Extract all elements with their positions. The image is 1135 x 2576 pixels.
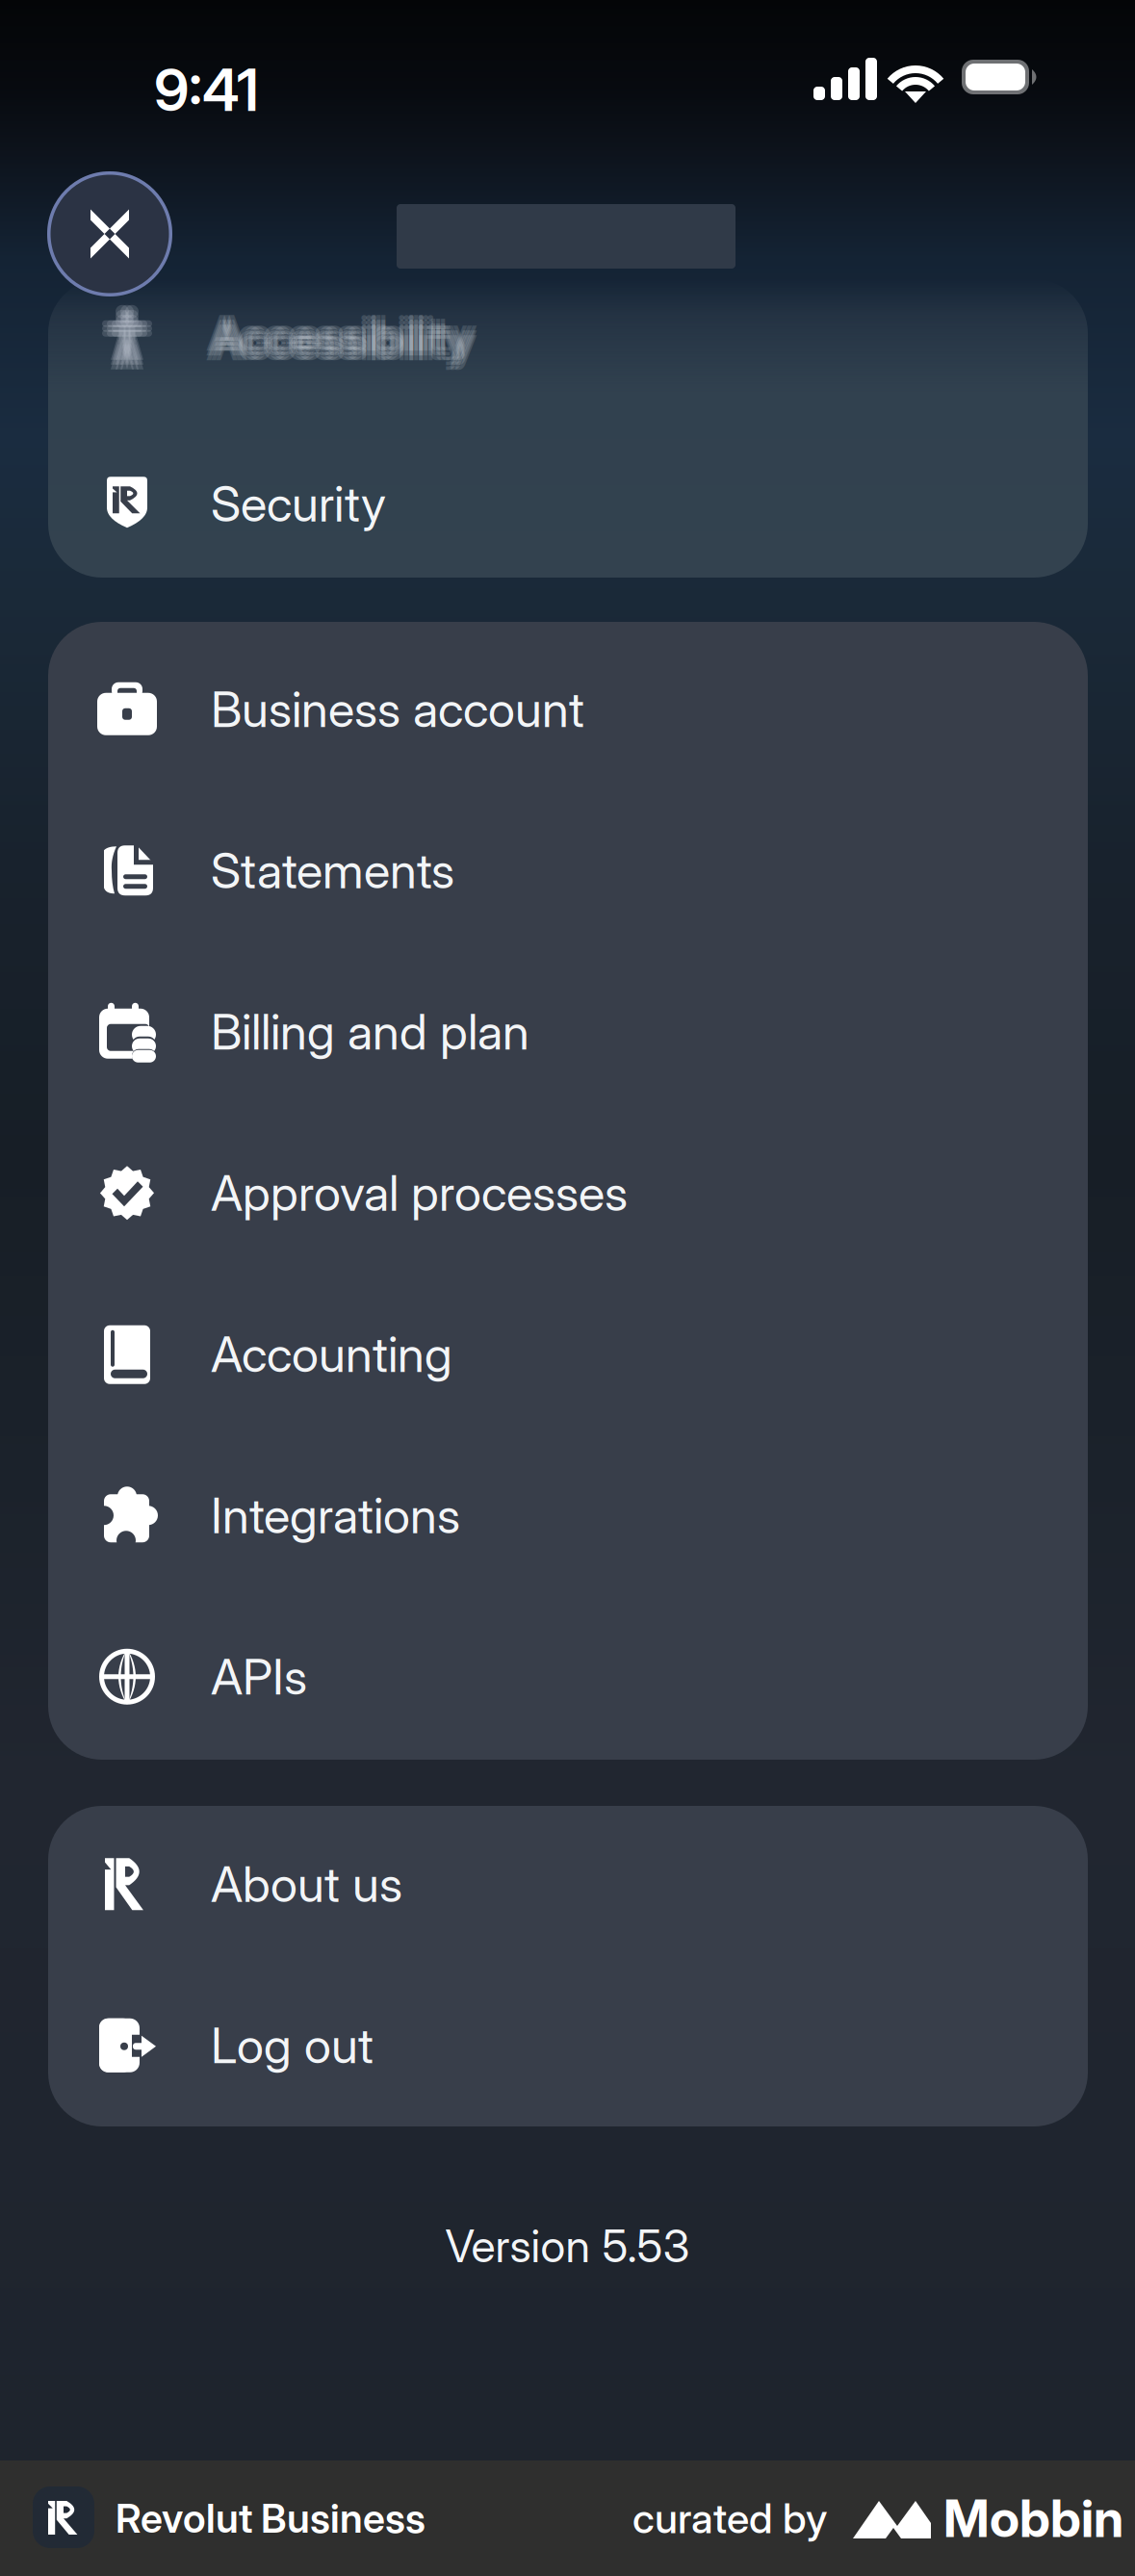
staticText: Log out	[211, 2016, 374, 2075]
staticText: Security	[211, 474, 386, 533]
staticText: Revolut Business	[116, 2494, 426, 2542]
button[interactable]: Billing and plan	[48, 951, 1088, 1112]
staticText: Version 5.53	[445, 2219, 690, 2273]
staticText: Accessibility	[206, 303, 468, 362]
button[interactable]: Close	[47, 171, 172, 296]
staticText: Accessibility	[211, 303, 473, 362]
staticText: 9:41	[154, 55, 259, 125]
button[interactable]: Integrations	[48, 1435, 1088, 1596]
button[interactable]: Security	[48, 423, 1088, 584]
button[interactable]: Statements	[48, 790, 1088, 951]
staticText: Business account	[211, 680, 584, 739]
staticText: Accessibility	[211, 308, 473, 367]
staticText: Integrations	[211, 1486, 460, 1545]
staticText: Statements	[211, 841, 454, 900]
staticText: curated by	[632, 2493, 827, 2543]
button[interactable]: Accounting	[48, 1274, 1088, 1435]
staticText: Accounting	[211, 1325, 452, 1384]
staticText: Accessibility	[216, 308, 477, 367]
button[interactable]: Log out	[48, 1965, 1088, 2126]
staticText: Accessibility	[211, 313, 473, 372]
button[interactable]: Approval processes	[48, 1112, 1088, 1274]
staticText: Mobbin	[943, 2487, 1123, 2549]
staticText: Approval processes	[211, 1163, 628, 1222]
staticText: Accessibility	[206, 313, 468, 372]
staticText: Accessibility	[206, 308, 468, 367]
staticText: Accessibility	[216, 303, 477, 362]
button[interactable]: Business account	[48, 629, 1088, 790]
staticText: APIs	[211, 1647, 307, 1706]
staticText: Billing and plan	[211, 1002, 529, 1061]
staticText: Accessibility	[216, 313, 477, 372]
button[interactable]: About us	[48, 1803, 1088, 1965]
button[interactable]: APIs	[48, 1596, 1088, 1757]
staticText: About us	[211, 1855, 402, 1914]
button[interactable]: Accessibility	[48, 262, 1088, 423]
